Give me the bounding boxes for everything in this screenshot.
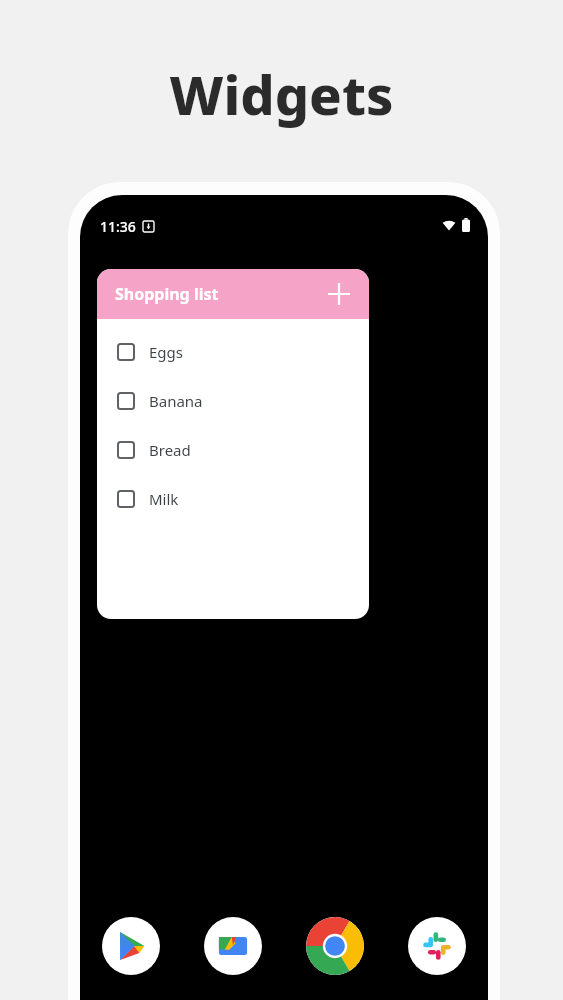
staticText: 11:36 bbox=[100, 217, 136, 236]
staticText: Bread bbox=[149, 440, 191, 460]
staticText: Milk bbox=[149, 489, 179, 509]
button[interactable]: Chrome bbox=[306, 917, 364, 975]
button[interactable]: Add item bbox=[323, 278, 355, 310]
staticText: Widgets bbox=[0, 57, 563, 131]
staticText: Banana bbox=[149, 391, 203, 411]
button[interactable]: Milk bbox=[97, 474, 369, 523]
staticText: Eggs bbox=[149, 342, 183, 362]
button[interactable]: Files bbox=[204, 917, 262, 975]
button[interactable]: Slack bbox=[408, 917, 466, 975]
button[interactable]: Shopping list bbox=[97, 269, 369, 319]
button[interactable]: Eggs bbox=[97, 327, 369, 376]
button[interactable]: Banana bbox=[97, 376, 369, 425]
staticText: Shopping list bbox=[115, 283, 219, 305]
button[interactable]: Bread bbox=[97, 425, 369, 474]
button[interactable]: Play Store bbox=[102, 917, 160, 975]
